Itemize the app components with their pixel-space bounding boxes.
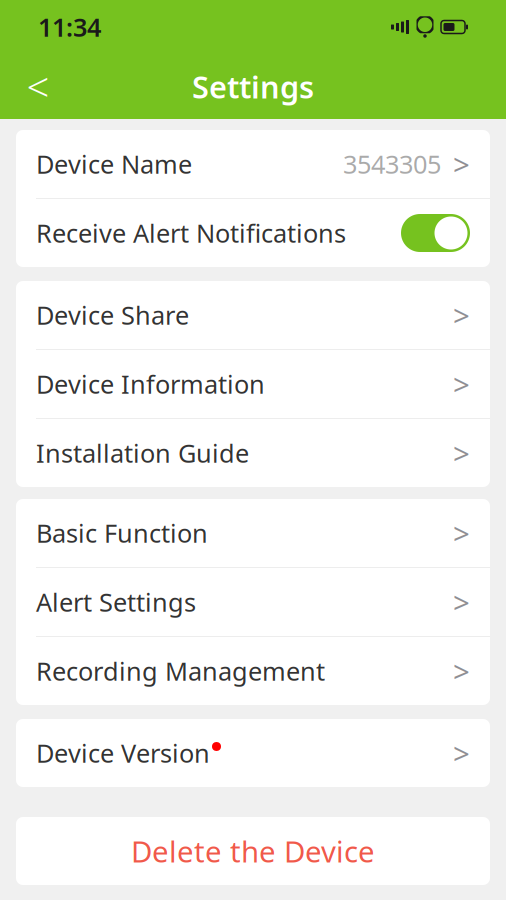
staticText: Basic Function bbox=[36, 516, 208, 550]
staticText: Receive Alert Notifications bbox=[36, 216, 346, 250]
button[interactable]: Device Name bbox=[16, 130, 490, 198]
staticText: > bbox=[453, 295, 470, 334]
staticText: Settings bbox=[192, 66, 314, 107]
button[interactable]: Delete the Device bbox=[16, 817, 490, 885]
staticText: 3543305 bbox=[343, 147, 441, 181]
staticText: Installation Guide bbox=[36, 436, 249, 470]
staticText: < bbox=[26, 60, 49, 113]
staticText: Alert Settings bbox=[36, 585, 196, 619]
staticText: Recording Management bbox=[36, 654, 325, 688]
staticText: Device Name bbox=[36, 147, 192, 181]
staticText: 11:34 bbox=[38, 10, 101, 44]
button[interactable]: Basic Function bbox=[16, 499, 490, 567]
button[interactable]: Device Version bbox=[16, 719, 490, 787]
staticText: Delete the Device bbox=[131, 831, 375, 870]
staticText: Device Share bbox=[36, 298, 189, 332]
staticText: > bbox=[453, 364, 470, 403]
button[interactable]: Alert Settings bbox=[16, 568, 490, 636]
button[interactable]: Recording Management bbox=[16, 637, 490, 705]
button[interactable]: Back bbox=[16, 60, 60, 112]
staticText: > bbox=[453, 433, 470, 472]
button[interactable]: Receive Alert Notifications bbox=[401, 214, 470, 252]
button[interactable]: Device Share bbox=[16, 281, 490, 349]
staticText: > bbox=[453, 582, 470, 621]
button[interactable]: Device Information bbox=[16, 350, 490, 418]
staticText: Device Information bbox=[36, 367, 265, 401]
staticText: Device Version bbox=[36, 736, 210, 770]
staticText: > bbox=[453, 144, 470, 183]
button[interactable]: Installation Guide bbox=[16, 419, 490, 487]
staticText: > bbox=[453, 651, 470, 690]
staticText: > bbox=[453, 733, 470, 772]
staticText: > bbox=[453, 513, 470, 552]
